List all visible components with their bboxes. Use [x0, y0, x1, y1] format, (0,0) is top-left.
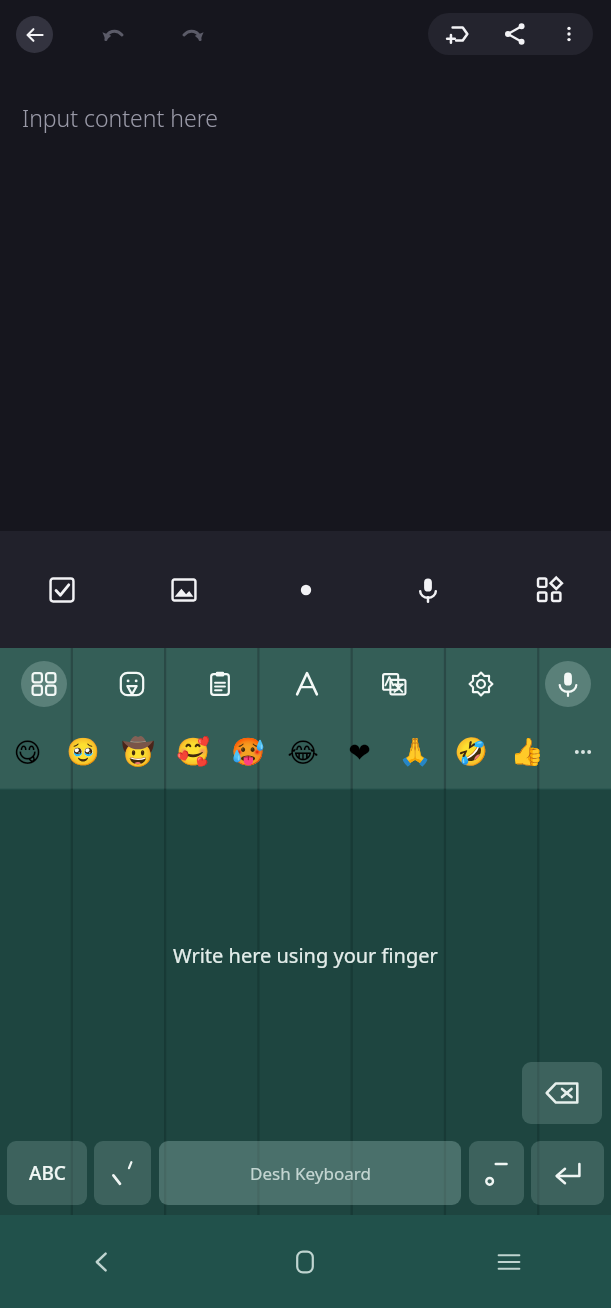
button[interactable]: 🙏 — [387, 719, 443, 785]
button[interactable]: Image — [123, 531, 245, 648]
button[interactable]: Recent apps — [407, 1215, 611, 1308]
button[interactable]: Share — [485, 13, 545, 55]
button[interactable]: 🤠 — [110, 719, 165, 785]
staticText: ❤️ — [348, 737, 371, 768]
button[interactable]: ABC — [7, 1141, 87, 1205]
button[interactable]: ❤️ — [331, 719, 387, 785]
staticText: 👍 — [510, 736, 544, 768]
button[interactable]: Back — [0, 1215, 203, 1308]
staticText: 😋 — [13, 737, 42, 768]
button[interactable]: 😂 — [275, 719, 331, 785]
button[interactable]: More emoji — [555, 719, 611, 785]
button[interactable]: Voice input — [524, 648, 611, 719]
button[interactable]: Desh Keyboard — [159, 1141, 461, 1205]
button[interactable]: Punctuation — [469, 1141, 524, 1205]
staticText: Input content here — [22, 102, 218, 133]
button[interactable]: Voice — [367, 531, 489, 648]
button[interactable]: Settings — [437, 648, 524, 719]
button[interactable]: Text style — [263, 648, 350, 719]
button[interactable]: 🤣 — [443, 719, 499, 785]
staticText: 🤣 — [454, 736, 488, 768]
staticText: 🤠 — [121, 736, 155, 768]
button[interactable]: More options — [545, 13, 593, 55]
button[interactable]: Back — [16, 16, 53, 53]
button[interactable]: Draw — [245, 531, 367, 648]
staticText: ABC — [29, 1160, 66, 1186]
button[interactable]: Undo — [93, 14, 133, 54]
button[interactable]: Keyboard modes — [0, 648, 88, 719]
button[interactable]: 🥰 — [165, 719, 220, 785]
button[interactable]: 👍 — [499, 719, 555, 785]
button[interactable]: 🥵 — [220, 719, 275, 785]
staticText: 🙏 — [398, 736, 432, 768]
button[interactable]: Add to note — [428, 13, 485, 55]
staticText: Desh Keyboard — [250, 1162, 371, 1185]
button[interactable]: Enter — [531, 1141, 604, 1205]
button[interactable]: Backspace — [522, 1062, 602, 1124]
button[interactable]: 🥹 — [55, 719, 110, 785]
button[interactable]: Symbols — [94, 1141, 151, 1205]
staticText: 🥰 — [176, 736, 210, 768]
button[interactable]: Stickers — [88, 648, 176, 719]
button[interactable]: Redo — [172, 14, 212, 54]
staticText: 😂 — [287, 737, 319, 768]
staticText: 🥹 — [66, 736, 100, 768]
button[interactable]: Home — [203, 1215, 407, 1308]
button[interactable]: Checklist — [0, 531, 123, 648]
button[interactable]: Clipboard — [176, 648, 263, 719]
staticText: Write here using your finger — [173, 942, 438, 969]
button[interactable]: Widgets — [489, 531, 611, 648]
staticText: 🥵 — [231, 736, 265, 768]
button[interactable]: Translate — [350, 648, 437, 719]
button[interactable]: 😋 — [0, 719, 55, 785]
